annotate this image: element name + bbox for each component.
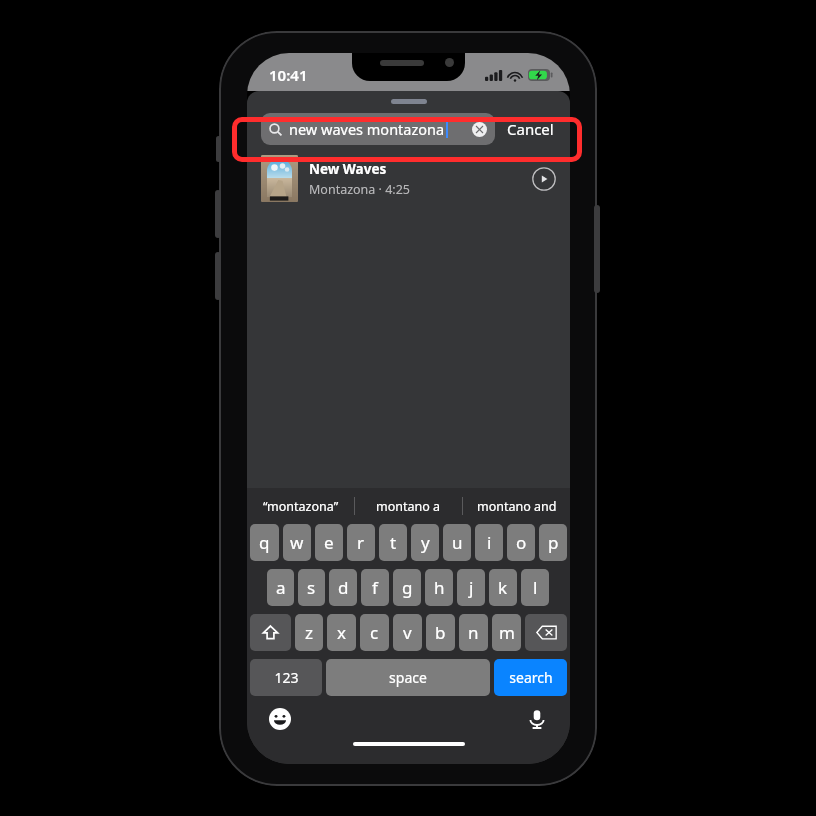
button[interactable]: d <box>329 569 357 606</box>
button[interactable]: search <box>494 659 567 696</box>
staticText: q <box>259 531 270 554</box>
button[interactable]: o <box>507 524 535 561</box>
button[interactable]: Play <box>532 167 556 191</box>
staticText: f <box>372 576 378 599</box>
button[interactable]: new waves montazona <box>261 113 495 145</box>
button[interactable]: montano a <box>355 488 462 524</box>
staticText: New Waves <box>309 160 387 178</box>
staticText: search <box>509 668 553 687</box>
staticText: z <box>305 621 313 644</box>
staticText: k <box>498 576 508 599</box>
staticText: e <box>324 531 334 554</box>
button[interactable]: 123 <box>250 659 322 696</box>
staticText: l <box>533 576 538 599</box>
staticText: p <box>548 531 559 554</box>
button[interactable]: space <box>326 659 490 696</box>
button[interactable]: z <box>295 614 323 651</box>
staticText: x <box>337 621 346 644</box>
button[interactable]: Shift <box>250 614 291 651</box>
button[interactable]: a <box>267 569 294 606</box>
staticText: “montazona” <box>263 498 339 515</box>
button[interactable]: Cancel <box>505 115 556 143</box>
staticText: new waves montazona <box>289 119 445 139</box>
button[interactable]: t <box>379 524 407 561</box>
button[interactable]: Emoji <box>269 708 291 730</box>
staticText: 10:41 <box>269 65 308 85</box>
button[interactable]: n <box>459 614 488 651</box>
button[interactable]: “montazona” <box>247 488 354 524</box>
staticText: s <box>307 576 316 599</box>
staticText: h <box>434 576 445 599</box>
button[interactable]: u <box>443 524 471 561</box>
button[interactable]: m <box>492 614 521 651</box>
button[interactable]: f <box>361 569 389 606</box>
staticText: j <box>469 576 474 599</box>
button[interactable]: v <box>393 614 422 651</box>
button[interactable]: l <box>521 569 549 606</box>
button[interactable]: Backspace <box>525 614 567 651</box>
button[interactable]: x <box>327 614 356 651</box>
staticText: Cancel <box>507 119 554 139</box>
button[interactable]: q <box>250 524 279 561</box>
staticText: space <box>389 668 427 687</box>
staticText: b <box>435 621 446 644</box>
staticText: Montazona · 4:25 <box>309 181 410 198</box>
button[interactable]: c <box>360 614 389 651</box>
staticText: v <box>403 621 412 644</box>
button[interactable]: i <box>475 524 503 561</box>
button[interactable]: New Waves <box>247 151 570 206</box>
staticText: c <box>370 621 379 644</box>
button[interactable]: h <box>425 569 453 606</box>
button[interactable]: y <box>411 524 439 561</box>
button[interactable]: r <box>347 524 375 561</box>
staticText: m <box>499 621 515 644</box>
staticText: g <box>402 576 413 599</box>
staticText: d <box>338 576 349 599</box>
button[interactable]: b <box>426 614 455 651</box>
button[interactable]: j <box>457 569 485 606</box>
button[interactable]: s <box>298 569 325 606</box>
staticText: a <box>276 576 286 599</box>
staticText: montano a <box>376 498 441 515</box>
button[interactable]: w <box>283 524 311 561</box>
button[interactable]: k <box>489 569 517 606</box>
staticText: 123 <box>274 668 299 687</box>
button[interactable]: montano and <box>463 488 570 524</box>
staticText: i <box>487 531 492 554</box>
staticText: y <box>421 531 430 554</box>
button[interactable]: e <box>315 524 343 561</box>
staticText: w <box>290 531 304 554</box>
button[interactable]: p <box>539 524 567 561</box>
staticText: o <box>516 531 527 554</box>
staticText: t <box>390 531 397 554</box>
button[interactable]: Dictation <box>526 708 548 730</box>
staticText: u <box>452 531 463 554</box>
staticText: r <box>357 531 365 554</box>
button[interactable]: Clear search <box>472 122 487 137</box>
staticText: n <box>468 621 479 644</box>
staticText: montano and <box>477 498 557 515</box>
button[interactable]: g <box>393 569 421 606</box>
